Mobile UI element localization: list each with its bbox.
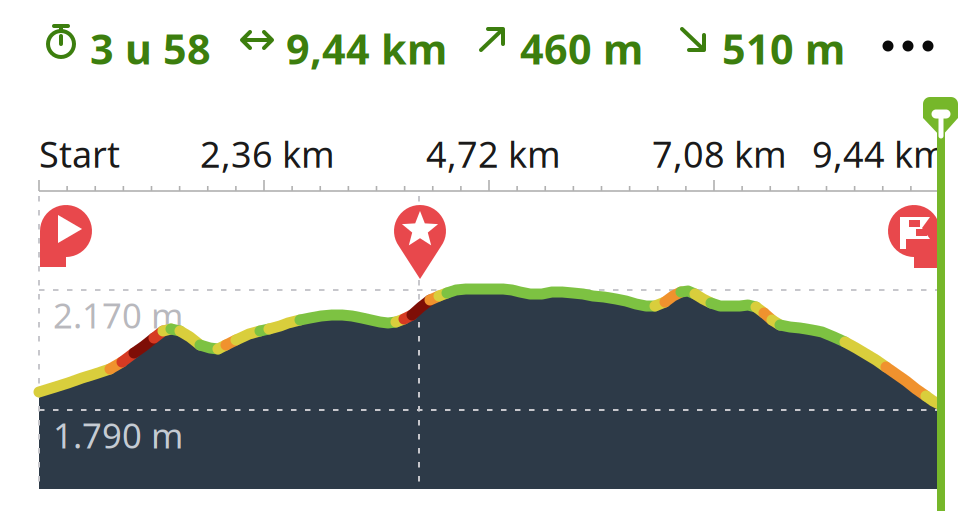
staticText: 9,44 km [286, 21, 447, 76]
staticText: 1.790 m [53, 412, 183, 458]
button[interactable]: More options [872, 16, 944, 76]
staticText: 4,72 km [426, 130, 561, 178]
staticText: 3 u 58 [90, 21, 211, 76]
staticText: 2.170 m [53, 292, 183, 338]
staticText: 7,08 km [652, 130, 787, 178]
staticText: 2,36 km [200, 130, 335, 178]
button[interactable]: Position on route [0, 0, 980, 511]
staticText: Start [39, 130, 120, 178]
staticText: 510 m [722, 21, 845, 76]
staticText: 460 m [520, 21, 643, 76]
staticText: 9,44 km [812, 130, 947, 178]
